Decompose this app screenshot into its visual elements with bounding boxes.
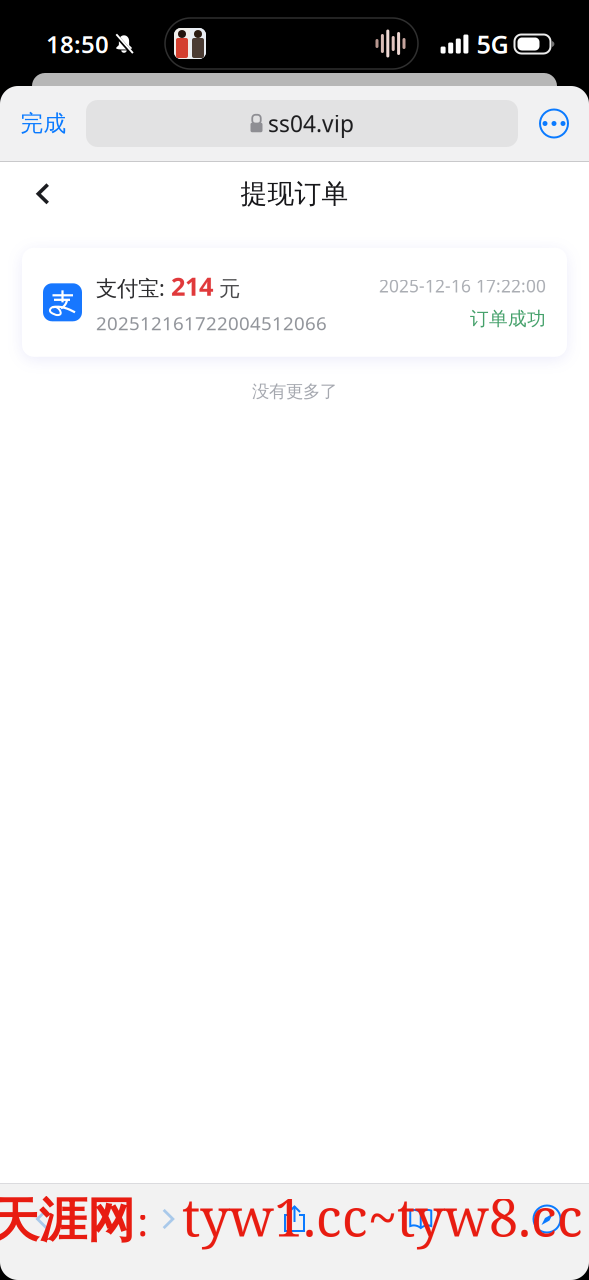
button[interactable]: Bookmarks <box>393 1195 449 1243</box>
button[interactable]: Back <box>14 1195 70 1243</box>
staticText: 5G <box>476 27 508 61</box>
button[interactable]: Tabs <box>519 1195 575 1243</box>
staticText: 完成 <box>20 110 66 137</box>
button[interactable]: 完成 <box>0 98 66 148</box>
button[interactable]: Back <box>0 168 68 220</box>
staticText: ss04.vip <box>268 108 354 138</box>
staticText: 元 <box>213 275 240 302</box>
staticText: : <box>137 1194 148 1248</box>
staticText: 订单成功 <box>470 307 546 330</box>
staticText: 2025-12-16 17:22:00 <box>379 274 546 297</box>
staticText: 202512161722004512066 <box>96 311 327 335</box>
staticText: 18:50 <box>46 28 109 60</box>
button[interactable]: Forward <box>140 1195 196 1243</box>
staticText: 天涯网 <box>0 1191 135 1250</box>
staticText: 提现订单 <box>240 177 348 210</box>
button[interactable]: More <box>532 101 576 145</box>
staticText: tyw1.cc~tyw8.cc <box>182 1181 583 1252</box>
staticText: 支付宝: <box>96 274 171 302</box>
staticText: 没有更多了 <box>252 381 337 402</box>
button[interactable]: ss04.vip <box>66 100 518 147</box>
staticText: 214 <box>171 269 213 303</box>
button[interactable]: Share <box>266 1195 322 1243</box>
